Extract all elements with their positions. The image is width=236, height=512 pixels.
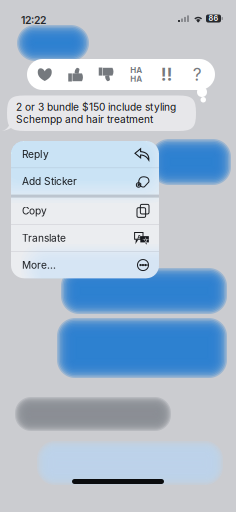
button[interactable]: Haha (121, 59, 151, 90)
staticText: Add Sticker (22, 175, 77, 187)
button[interactable]: Translate (11, 225, 159, 251)
staticText: 12:22 (21, 14, 46, 27)
staticText: A (137, 233, 142, 241)
staticText: Translate (22, 232, 66, 244)
button[interactable]: Question (182, 59, 212, 90)
button[interactable]: Dislike (90, 59, 121, 90)
staticText: ? (193, 64, 202, 85)
button[interactable]: Copy (11, 198, 159, 224)
button[interactable]: Emphasize (151, 59, 182, 90)
staticText: HA (130, 74, 142, 84)
staticText: 2 or 3 bundle $150 include styling Schem… (16, 101, 176, 125)
button[interactable]: Add Sticker (11, 168, 159, 195)
button[interactable]: Reply (11, 141, 159, 167)
staticText: 86 (208, 14, 218, 23)
button[interactable]: More... (11, 252, 159, 278)
button[interactable]: Like (60, 59, 90, 90)
staticText: More... (22, 259, 56, 271)
staticText: ‼ (161, 64, 173, 85)
staticText: Copy (22, 205, 47, 217)
staticText: 文 (142, 237, 149, 245)
staticText: Reply (22, 148, 49, 160)
staticText: HA (130, 65, 142, 75)
button[interactable]: Love (29, 59, 60, 90)
